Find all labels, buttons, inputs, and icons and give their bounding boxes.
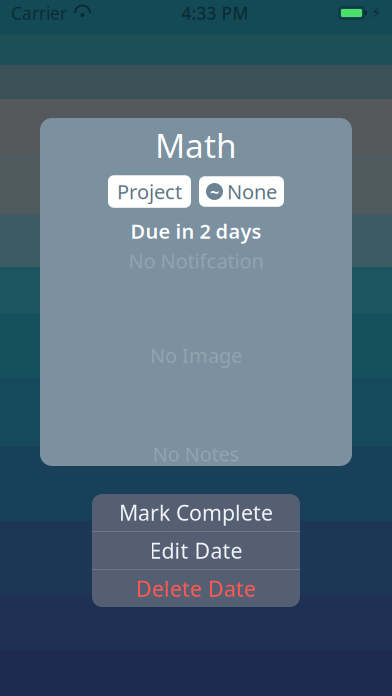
staticText: None (227, 178, 277, 205)
staticText: ⚡︎ (371, 5, 381, 21)
button[interactable]: Delete Date (92, 570, 300, 607)
staticText: No Notes (152, 440, 239, 467)
staticText: Carrier (11, 1, 67, 24)
staticText: Project (117, 178, 182, 205)
button[interactable]: Project (108, 175, 191, 208)
staticText: No Image (150, 342, 242, 368)
staticText: ~ (210, 181, 219, 202)
button[interactable]: ~ (199, 176, 284, 207)
staticText: Due in 2 days (130, 218, 261, 244)
button[interactable]: Mark Complete (92, 494, 300, 531)
staticText: Mark Complete (119, 498, 273, 527)
staticText: No Notifcation (128, 247, 263, 274)
button[interactable]: Edit Date (92, 532, 300, 569)
staticText: 4:33 PM (181, 1, 248, 24)
staticText: Math (155, 123, 237, 167)
staticText: Edit Date (149, 536, 242, 565)
staticText: Delete Date (136, 574, 256, 603)
